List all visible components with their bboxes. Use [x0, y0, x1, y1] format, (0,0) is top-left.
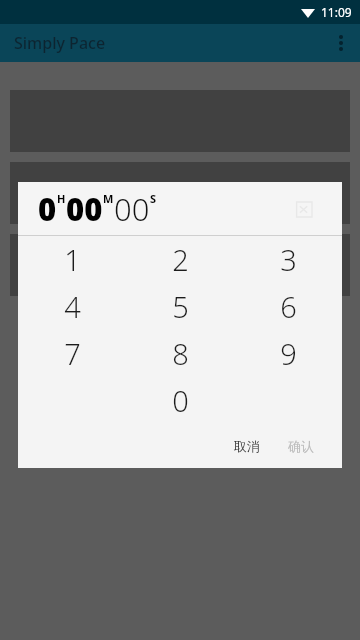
- staticText: 1: [64, 240, 81, 279]
- button[interactable]: 0: [126, 377, 234, 424]
- button[interactable]: 7: [18, 330, 126, 377]
- button[interactable]: 8: [126, 330, 234, 377]
- staticText: 6: [280, 287, 297, 326]
- staticText: 7: [64, 334, 81, 373]
- staticText: 00: [114, 188, 150, 230]
- staticText: 8: [172, 334, 189, 373]
- staticText: 11:09: [321, 4, 352, 20]
- staticText: M: [103, 191, 114, 206]
- button[interactable]: 3: [234, 236, 342, 283]
- staticText: 确认: [288, 438, 314, 454]
- button[interactable]: More options: [322, 24, 360, 62]
- button[interactable]: 6: [234, 283, 342, 330]
- staticText: 3: [280, 240, 297, 279]
- staticText: 5: [172, 287, 189, 326]
- button[interactable]: 确认: [274, 430, 328, 462]
- staticText: H: [57, 191, 66, 206]
- button[interactable]: 1: [18, 236, 126, 283]
- button[interactable]: 5: [126, 283, 234, 330]
- staticText: 0: [172, 381, 189, 420]
- staticText: 取消: [234, 438, 260, 454]
- staticText: Simply Pace: [14, 32, 106, 54]
- button[interactable]: 9: [234, 330, 342, 377]
- staticText: 0: [38, 188, 57, 230]
- button[interactable]: Backspace: [284, 192, 318, 226]
- staticText: 2: [172, 240, 189, 279]
- staticText: 9: [280, 334, 297, 373]
- button[interactable]: 取消: [220, 430, 274, 462]
- button[interactable]: 2: [126, 236, 234, 283]
- button[interactable]: 4: [18, 283, 126, 330]
- staticText: 00: [66, 188, 103, 230]
- staticText: S: [150, 191, 157, 206]
- staticText: 4: [64, 287, 81, 326]
